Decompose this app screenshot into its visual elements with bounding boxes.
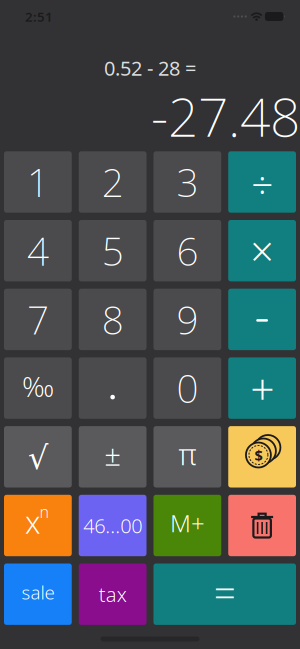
- button[interactable]: 6: [153, 220, 221, 281]
- button[interactable]: 46...00: [79, 495, 147, 556]
- button[interactable]: ±: [79, 426, 147, 487]
- staticText: M+: [170, 507, 205, 539]
- button[interactable]: x: [4, 495, 72, 556]
- staticText: ×: [250, 223, 274, 278]
- button[interactable]: 4: [4, 220, 72, 281]
- button[interactable]: +: [228, 357, 296, 419]
- button[interactable]: =: [153, 563, 296, 625]
- button[interactable]: tax: [79, 563, 147, 625]
- staticText: 8: [102, 294, 124, 345]
- staticText: 0: [176, 362, 198, 414]
- button[interactable]: M+: [153, 495, 221, 556]
- button[interactable]: ÷: [228, 151, 296, 213]
- staticText: ÷: [251, 158, 273, 210]
- button[interactable]: 7: [4, 289, 72, 350]
- staticText: 2:51: [25, 8, 53, 25]
- staticText: sale: [21, 580, 54, 605]
- button[interactable]: 9: [153, 289, 221, 350]
- button[interactable]: Clear: [228, 495, 296, 556]
- button[interactable]: 3: [153, 151, 221, 213]
- button[interactable]: Currency: [228, 426, 296, 487]
- staticText: $: [254, 445, 262, 465]
- staticText: 9: [176, 294, 198, 345]
- staticText: +: [250, 360, 274, 416]
- staticText: 6: [176, 225, 198, 276]
- button[interactable]: ×: [228, 220, 296, 281]
- staticText: 5: [102, 225, 124, 276]
- button[interactable]: √: [4, 426, 72, 487]
- button[interactable]: sale: [4, 563, 72, 625]
- staticText: ‰: [22, 367, 54, 405]
- staticText: x: [25, 501, 40, 542]
- staticText: 7: [27, 294, 49, 345]
- staticText: 0.52 - 28 =: [104, 55, 196, 81]
- staticText: tax: [99, 581, 127, 607]
- staticText: n: [39, 501, 49, 522]
- staticText: 4: [27, 225, 49, 276]
- staticText: 3: [176, 156, 198, 208]
- staticText: 2: [102, 156, 124, 208]
- button[interactable]: 5: [79, 220, 147, 281]
- button[interactable]: Subtract: [228, 289, 296, 350]
- staticText: ±: [104, 435, 121, 474]
- staticText: 46...00: [83, 512, 142, 539]
- staticText: =: [214, 566, 236, 618]
- staticText: -27.48: [151, 81, 300, 151]
- staticText: π: [178, 434, 196, 473]
- button[interactable]: 1: [4, 151, 72, 213]
- staticText: √: [28, 440, 48, 476]
- button[interactable]: 8: [79, 289, 147, 350]
- button[interactable]: π: [153, 426, 221, 487]
- button[interactable]: 2: [79, 151, 147, 213]
- button[interactable]: ‰: [4, 357, 72, 419]
- button[interactable]: Decimal point: [79, 357, 147, 419]
- button[interactable]: 0: [153, 357, 221, 419]
- staticText: 1: [27, 156, 49, 208]
